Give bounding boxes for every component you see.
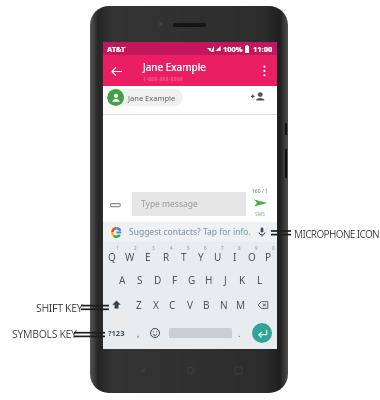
staticText: SYMBOLS KEY (12, 327, 77, 341)
staticText: M (236, 298, 246, 312)
button[interactable]: Q (103, 242, 121, 267)
button[interactable]: E (139, 242, 157, 267)
button[interactable]: Backspace (249, 292, 277, 317)
staticText: 100% (223, 44, 243, 54)
staticText: F (172, 273, 178, 287)
staticText: V (187, 298, 193, 312)
staticText: AT&T (107, 44, 126, 54)
button[interactable]: A (113, 267, 131, 292)
button[interactable]: Space (164, 317, 236, 349)
staticText: Jane Example (143, 60, 206, 74)
staticText: U (214, 250, 222, 264)
staticText: S (137, 273, 143, 287)
staticText: 8 (238, 245, 241, 251)
staticText: J (224, 273, 227, 287)
button[interactable]: L (251, 267, 268, 292)
staticText: D (154, 273, 162, 287)
button[interactable]: More options (256, 63, 272, 79)
button[interactable]: Send (250, 195, 270, 211)
staticText: P (265, 250, 272, 264)
button[interactable]: B (198, 292, 215, 317)
staticText: 11:00 (253, 44, 273, 54)
staticText: 9 (255, 245, 258, 251)
staticText: 0 (272, 245, 275, 251)
staticText: 7 (221, 245, 224, 251)
staticText: G (188, 273, 196, 287)
staticText: K (239, 273, 246, 287)
staticText: I (233, 250, 237, 264)
staticText: A (119, 273, 126, 287)
button[interactable]: D (149, 267, 166, 292)
staticText: O (248, 250, 256, 264)
staticText: Suggest contacts? Tap for info. (129, 226, 251, 238)
staticText: H (205, 273, 213, 287)
button[interactable]: U (209, 242, 226, 267)
staticText: 1 (116, 245, 119, 251)
staticText: Z (136, 298, 142, 312)
button[interactable]: X (147, 292, 164, 317)
button[interactable]: P (260, 242, 277, 267)
button[interactable]: S (131, 267, 149, 292)
button[interactable]: Type message (132, 192, 246, 216)
button[interactable]: Shift (103, 292, 130, 317)
staticText: R (163, 250, 170, 264)
button[interactable]: Z (130, 292, 147, 317)
button[interactable]: K (234, 267, 251, 292)
staticText: 5 (187, 245, 190, 251)
button[interactable]: Y (192, 242, 209, 267)
button[interactable]: G (183, 267, 200, 292)
button[interactable]: J (217, 267, 234, 292)
staticText: 4 (170, 245, 173, 251)
staticText: 3 (152, 245, 155, 251)
staticText: ?123 (108, 328, 125, 338)
staticText: SMS (255, 211, 266, 218)
staticText: SHIFT KEY (36, 301, 83, 315)
button[interactable]: Back (107, 62, 125, 80)
staticText: , (137, 327, 140, 339)
staticText: L (257, 273, 263, 287)
button[interactable]: F (166, 267, 183, 292)
button[interactable]: , (130, 317, 146, 349)
staticText: 1-888-888-8888 (143, 75, 183, 82)
button[interactable]: Microphone (254, 224, 270, 240)
staticText: 160 / 1 (252, 188, 268, 195)
button[interactable]: Attach (108, 197, 122, 213)
staticText: W (125, 250, 135, 264)
staticText: 6 (204, 245, 207, 251)
staticText: Q (108, 250, 116, 264)
staticText: Type message (141, 198, 198, 210)
staticText: N (220, 298, 228, 312)
staticText: B (203, 298, 210, 312)
staticText: . (238, 327, 241, 339)
button[interactable]: R (157, 242, 175, 267)
staticText: C (169, 298, 176, 312)
staticText: Y (198, 250, 204, 264)
staticText: MICROPHONE ICON (294, 227, 380, 241)
staticText: X (153, 298, 159, 312)
staticText: Jane Example (128, 93, 176, 103)
button[interactable]: Jane Example (107, 89, 183, 106)
button[interactable]: H (200, 267, 217, 292)
button[interactable]: C (164, 292, 181, 317)
button[interactable]: Emoji (147, 317, 163, 349)
button[interactable]: I (226, 242, 243, 267)
button[interactable]: V (181, 292, 198, 317)
button[interactable]: Enter (249, 317, 274, 349)
button[interactable]: ?123 (106, 317, 127, 349)
staticText: T (181, 250, 187, 264)
button[interactable]: . (231, 317, 247, 349)
staticText: E (145, 250, 151, 264)
button[interactable]: M (232, 292, 249, 317)
staticText: 2 (134, 245, 137, 251)
button[interactable]: N (215, 292, 232, 317)
button[interactable]: W (121, 242, 139, 267)
button[interactable]: Add person (249, 88, 267, 106)
button[interactable]: O (243, 242, 260, 267)
button[interactable]: T (175, 242, 192, 267)
